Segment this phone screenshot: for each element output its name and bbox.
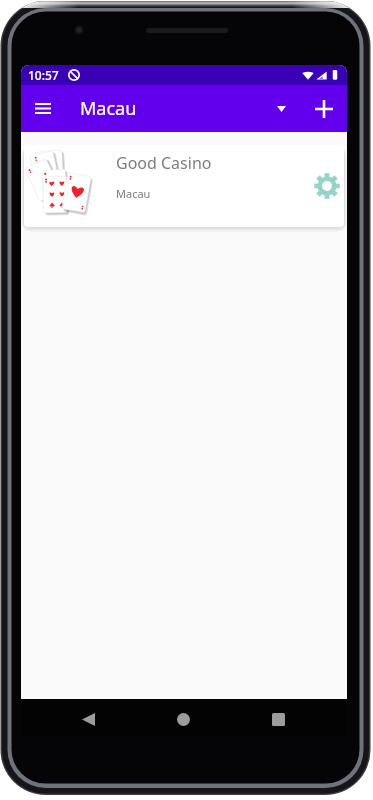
button[interactable]: Home <box>163 700 203 738</box>
staticText: Good Casino <box>116 152 212 174</box>
button[interactable]: Settings <box>310 145 344 227</box>
staticText: 10:57 <box>28 67 59 83</box>
button[interactable]: Good Casino <box>24 145 344 227</box>
staticText: Macau <box>80 96 137 121</box>
button[interactable]: Back <box>68 700 108 738</box>
button[interactable]: Show options <box>263 85 299 132</box>
staticText: Macau <box>116 186 151 201</box>
button[interactable]: Add <box>302 85 346 132</box>
button[interactable]: Recent apps <box>258 700 298 738</box>
button[interactable]: Open navigation menu <box>21 85 65 132</box>
